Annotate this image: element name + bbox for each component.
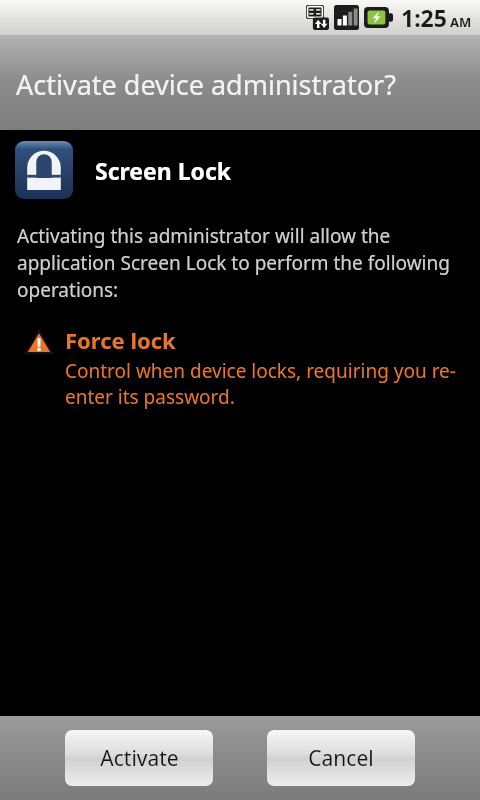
staticText: Cancel: [308, 744, 374, 773]
staticText: Activate: [100, 744, 179, 773]
staticText: Control when device locks, requiring you…: [65, 358, 460, 410]
staticText: Activating this administrator will allow…: [17, 223, 463, 303]
staticText: Force lock: [65, 325, 176, 355]
button[interactable]: Activate: [65, 730, 213, 786]
staticText: Activate device administrator?: [16, 66, 396, 103]
staticText: AM: [450, 13, 472, 31]
staticText: 1:25: [401, 2, 447, 33]
staticText: Screen Lock: [95, 155, 232, 186]
button[interactable]: Cancel: [267, 730, 415, 786]
